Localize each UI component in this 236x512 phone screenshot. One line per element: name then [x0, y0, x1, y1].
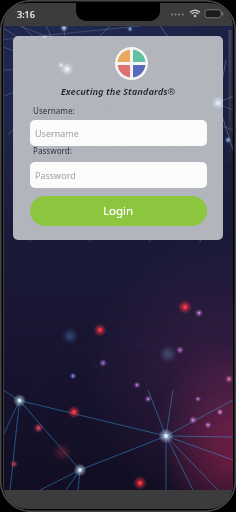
- staticText: Login: [103, 203, 134, 219]
- button[interactable]: Username: [30, 120, 207, 146]
- staticText: Password:: [33, 145, 72, 156]
- staticText: Password: [35, 169, 76, 181]
- staticText: 3:16: [17, 8, 35, 20]
- staticText: Username: [35, 127, 79, 139]
- staticText: Executing the Standards®: [13, 85, 223, 98]
- staticText: Username:: [33, 105, 75, 116]
- button[interactable]: Login: [30, 196, 207, 226]
- button[interactable]: Password: [30, 162, 207, 188]
